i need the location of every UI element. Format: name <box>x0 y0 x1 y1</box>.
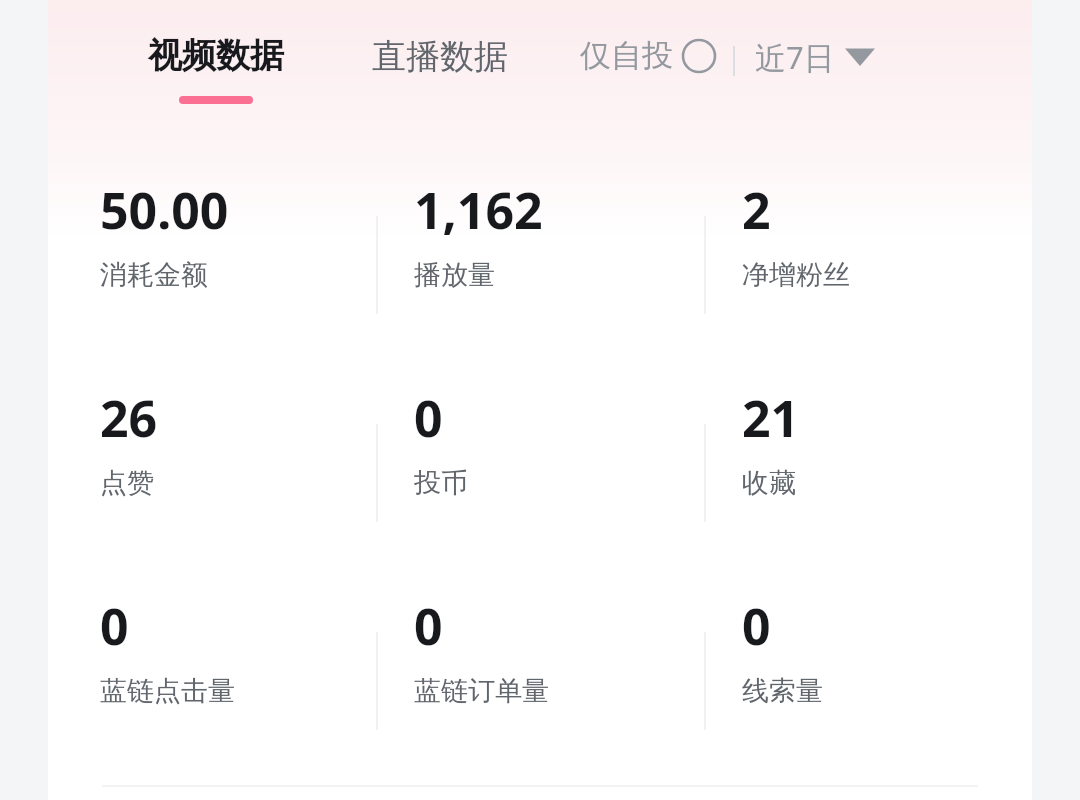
staticText: 1,162 <box>414 176 543 244</box>
button[interactable]: 0 <box>376 576 704 784</box>
staticText: 50.00 <box>100 176 229 244</box>
staticText: 0 <box>414 384 443 452</box>
staticText: 收藏 <box>742 466 796 500</box>
staticText: 蓝链点击量 <box>100 674 235 708</box>
button[interactable]: 0 <box>48 576 376 784</box>
staticText: 2 <box>742 176 771 244</box>
staticText: 仅自投 <box>580 36 673 75</box>
button[interactable]: 0 <box>376 368 704 576</box>
staticText: 消耗金额 <box>100 258 208 292</box>
staticText: 0 <box>414 592 443 660</box>
button[interactable]: 21 <box>704 368 1032 576</box>
staticText: 蓝链订单量 <box>414 674 549 708</box>
button[interactable]: 26 <box>48 368 376 576</box>
staticText: 线索量 <box>742 674 823 708</box>
staticText: 视频数据 <box>148 34 284 77</box>
button[interactable]: 50.00 <box>48 160 376 368</box>
button[interactable]: 0 <box>704 576 1032 784</box>
staticText: 投币 <box>414 466 468 500</box>
button[interactable]: 2 <box>704 160 1032 368</box>
staticText: 净增粉丝 <box>742 258 850 292</box>
staticText: 21 <box>742 384 800 452</box>
staticText: 播放量 <box>414 258 495 292</box>
staticText: 0 <box>742 592 771 660</box>
button[interactable]: 近7日 <box>755 36 875 78</box>
other: Select date range <box>845 47 875 67</box>
button[interactable]: 视频数据 <box>148 34 284 104</box>
other: Help <box>681 38 717 74</box>
button[interactable]: 1,162 <box>376 160 704 368</box>
button[interactable]: 直播数据 <box>372 34 508 78</box>
staticText: 26 <box>100 384 158 452</box>
staticText: 0 <box>100 592 129 660</box>
staticText: 点赞 <box>100 466 154 500</box>
staticText: 近7日 <box>755 36 835 78</box>
button[interactable]: 仅自投 <box>580 36 717 75</box>
